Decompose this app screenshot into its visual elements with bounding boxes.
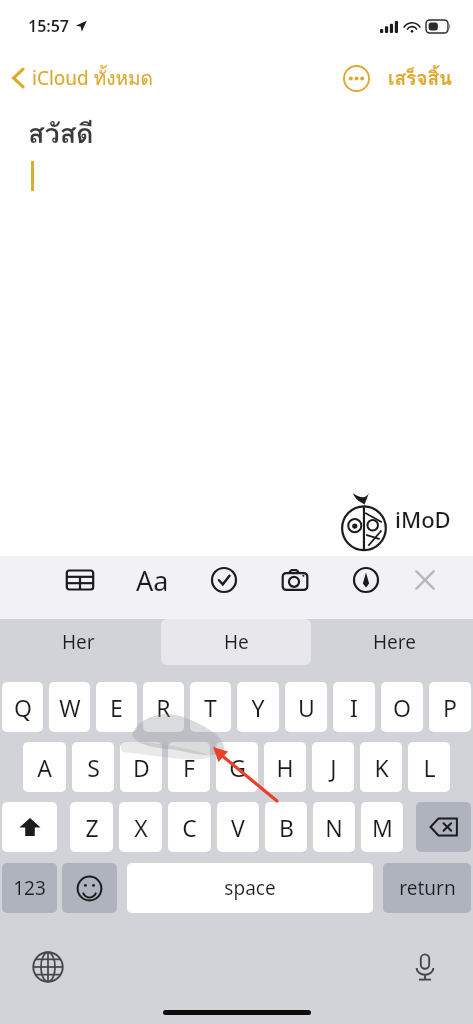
staticText: L [423,752,436,783]
staticText: E [110,692,123,723]
button[interactable]: return [383,863,471,913]
staticText: Aa [136,562,169,599]
staticText: B [279,812,294,843]
staticText: เสร็จสิ้น [388,63,453,93]
button[interactable]: G [216,742,258,792]
staticText: 123 [13,875,46,901]
button[interactable]: R [143,682,184,732]
button[interactable]: iCloud ทั้งหมด [0,57,165,99]
button[interactable]: A [23,742,66,792]
staticText: R [156,692,171,723]
button[interactable]: K [360,742,402,792]
staticText: G [229,752,246,783]
staticText: H [276,752,294,783]
staticText: W [59,692,81,723]
button[interactable]: W [49,682,90,732]
button[interactable]: P [429,682,471,732]
button[interactable]: S [72,742,114,792]
staticText: J [330,752,337,783]
button[interactable]: N [313,802,355,852]
button[interactable]: Camera [259,556,330,604]
button[interactable]: J [312,742,354,792]
button[interactable]: F [168,742,210,792]
button[interactable]: More options [336,58,376,98]
staticText: Her [62,629,95,655]
button[interactable]: Y [237,682,279,732]
staticText: Here [373,629,416,655]
button[interactable]: Close keyboard [401,556,449,604]
staticText: He [224,629,249,655]
staticText: O [393,692,411,723]
button[interactable]: H [264,742,306,792]
staticText: 15:57 [28,15,70,37]
button[interactable]: Dictation [401,943,449,991]
staticText: T [204,692,217,723]
staticText: D [133,752,150,783]
button[interactable]: D [120,742,162,792]
staticText: Q [14,692,32,723]
staticText: C [182,812,197,843]
staticText: iMoD [395,504,451,534]
staticText: Y [251,692,265,723]
button[interactable]: X [119,802,162,852]
button[interactable]: Q [2,682,43,732]
staticText: X [134,812,148,843]
button[interactable]: E [96,682,137,732]
button[interactable]: Emoji [62,863,117,913]
button[interactable]: Checklist [188,556,259,604]
button[interactable]: Markup [330,556,401,604]
button[interactable]: He [161,619,311,665]
staticText: V [231,812,245,843]
button[interactable]: Insert table [44,556,116,604]
button[interactable]: U [285,682,327,732]
staticText: สวัสดี [28,112,94,155]
button[interactable]: T [190,682,231,732]
staticText: A [37,752,52,783]
button[interactable]: O [381,682,423,732]
staticText: M [372,812,393,843]
staticText: U [298,692,315,723]
staticText: S [87,752,100,783]
staticText: space [224,875,276,901]
button[interactable]: B [265,802,307,852]
button[interactable]: M [361,802,403,852]
button[interactable]: V [217,802,259,852]
button[interactable]: Switch keyboard [24,943,72,991]
button[interactable]: C [168,802,211,852]
staticText: K [374,752,389,783]
button[interactable]: I [333,682,375,732]
staticText: Z [85,812,99,843]
button[interactable]: L [408,742,450,792]
button[interactable]: เสร็จสิ้น [382,57,459,99]
button[interactable]: space [127,863,373,913]
staticText: I [350,692,358,723]
button[interactable]: Aa [117,556,188,604]
button[interactable]: Shift [2,802,57,852]
button[interactable]: Here [315,619,473,665]
staticText: iCloud ทั้งหมด [32,63,153,93]
staticText: F [183,752,195,783]
button[interactable]: Her [0,619,157,665]
button[interactable]: Delete [416,802,471,852]
staticText: N [325,812,343,843]
button[interactable]: 123 [2,863,57,913]
button[interactable]: Z [70,802,113,852]
staticText: P [443,692,457,723]
staticText: return [399,875,456,901]
